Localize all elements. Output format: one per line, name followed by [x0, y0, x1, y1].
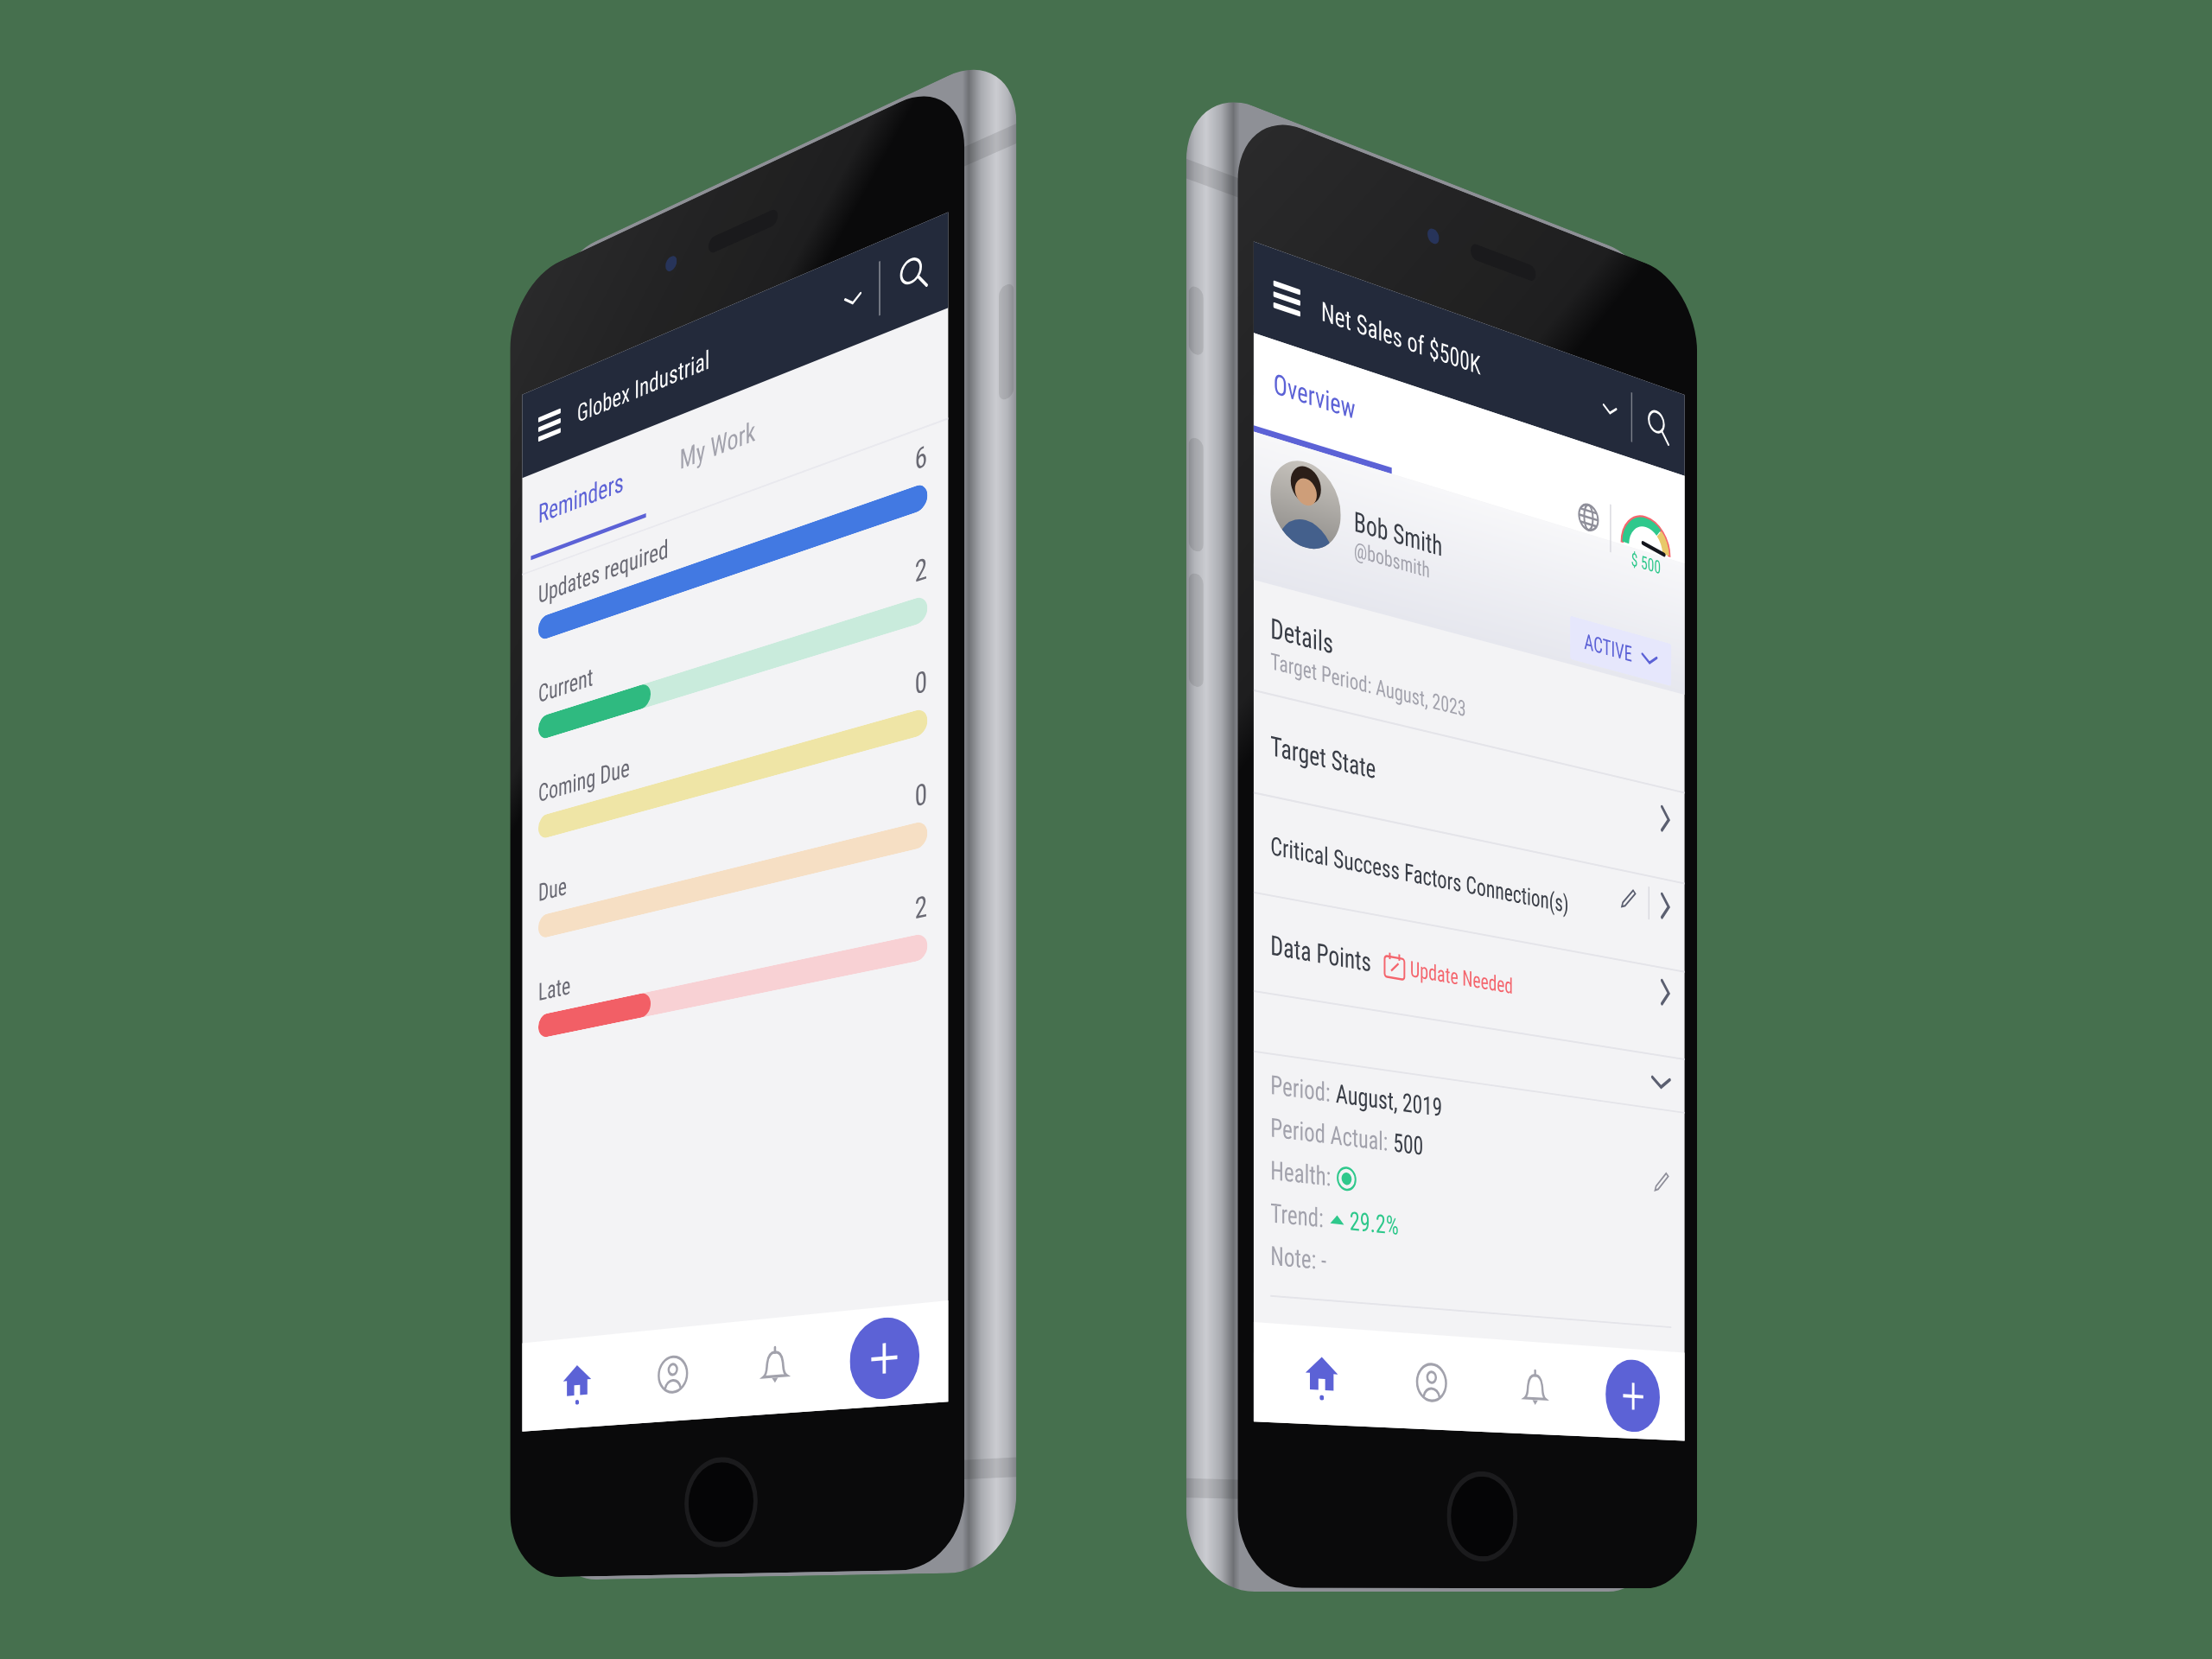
button[interactable]: Add	[850, 1314, 920, 1402]
button[interactable]: Add	[1606, 1358, 1660, 1433]
button[interactable]: Coming Due	[522, 646, 948, 872]
staticText: Period:	[1270, 1069, 1336, 1109]
button[interactable]: Menu	[538, 408, 561, 442]
button[interactable]: Late	[522, 873, 948, 1069]
staticText: Overview	[1273, 367, 1355, 425]
button[interactable]: Expand	[1602, 401, 1617, 418]
staticText: Reminders	[538, 466, 624, 530]
staticText: Target State	[1270, 730, 1376, 785]
button[interactable]: Global	[1578, 501, 1599, 534]
button[interactable]: Due	[522, 759, 948, 970]
button[interactable]: My Work	[671, 414, 756, 479]
button[interactable]: Profile	[624, 1323, 723, 1424]
button[interactable]: Notifications	[1484, 1338, 1585, 1436]
button[interactable]: Current	[522, 533, 948, 773]
button[interactable]: Edit	[1619, 884, 1638, 914]
staticText: My Work	[680, 414, 756, 476]
staticText: Period Actual:	[1270, 1112, 1393, 1157]
staticText: Bob Smith	[1354, 505, 1443, 562]
button[interactable]: Data Points	[1270, 896, 1671, 1056]
button[interactable]: Target State	[1270, 695, 1671, 880]
button[interactable]: Critical Success Factors Connection(s)	[1270, 797, 1671, 969]
staticText: August, 2019	[1336, 1078, 1443, 1123]
button[interactable]: Menu	[1273, 280, 1300, 317]
staticText: Net Sales of $500K	[1321, 295, 1481, 381]
staticText: 2	[915, 551, 927, 589]
other: Open Target State	[1659, 804, 1671, 834]
button[interactable]: Profile	[1377, 1331, 1484, 1432]
button[interactable]: Home	[531, 1333, 624, 1431]
staticText: Data Points	[1270, 929, 1372, 978]
staticText: 500	[1393, 1128, 1423, 1161]
staticText: Health:	[1270, 1155, 1336, 1193]
button[interactable]: Reminders	[522, 447, 671, 536]
staticText: $ 500	[1631, 549, 1661, 579]
staticText: Critical Success Factors Connection(s)	[1270, 831, 1569, 919]
button[interactable]: Home	[1264, 1323, 1377, 1427]
staticText: @bobsmith	[1354, 537, 1430, 583]
staticText: Current	[538, 662, 593, 708]
staticText: Late	[538, 971, 571, 1006]
staticText: 6	[915, 438, 927, 477]
staticText: Trend:	[1270, 1198, 1329, 1234]
staticText: Details	[1270, 611, 1334, 660]
button[interactable]: Updates required	[522, 419, 948, 674]
staticText: Due	[538, 871, 567, 907]
button[interactable]: ACTIVE	[1570, 616, 1671, 686]
staticText: 0	[915, 776, 927, 814]
staticText: Coming Due	[538, 752, 630, 808]
button[interactable]: Expand	[844, 289, 862, 310]
staticText: 0	[915, 663, 927, 702]
button[interactable]: Search	[898, 250, 929, 299]
button[interactable]: Collapse	[1651, 1073, 1671, 1092]
staticText: Updates required	[538, 533, 669, 609]
button[interactable]: Notifications	[723, 1312, 829, 1417]
staticText: ACTIVE	[1584, 629, 1632, 667]
staticText: Globex Industrial	[577, 344, 710, 428]
staticText: Note: -	[1270, 1240, 1327, 1276]
button[interactable]: Search	[1646, 406, 1670, 447]
staticText: 29.2%	[1349, 1206, 1399, 1241]
staticText: Update Needed	[1410, 956, 1513, 999]
staticText: 2	[915, 889, 927, 926]
staticText: Target Period: August, 2023	[1270, 648, 1467, 722]
button[interactable]: Overview	[1273, 367, 1355, 425]
button[interactable]: Edit data point	[1652, 1168, 1671, 1196]
